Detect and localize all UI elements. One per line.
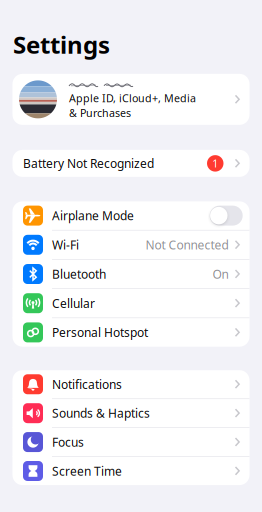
staticText: Not Connected [145, 237, 228, 253]
button[interactable]: Bluetooth [12, 260, 249, 288]
button[interactable]: Wi-Fi [12, 231, 249, 259]
staticText: Notifications [52, 376, 122, 392]
button[interactable]: Airplane Mode [12, 201, 249, 230]
staticText: & Purchases [69, 106, 131, 120]
button[interactable]: Personal Hotspot [12, 318, 249, 347]
staticText: 1 [212, 156, 218, 170]
staticText: Battery Not Recognized [23, 155, 154, 171]
button[interactable]: Notifications [12, 370, 249, 398]
button[interactable]: Sounds & Haptics [12, 399, 249, 427]
staticText: Personal Hotspot [52, 324, 148, 340]
staticText: Focus [52, 434, 84, 450]
staticText: Screen Time [52, 463, 122, 479]
staticText: Sounds & Haptics [52, 405, 150, 421]
staticText: Bluetooth [52, 266, 106, 282]
button[interactable]: Screen Time [12, 457, 249, 485]
staticText: On [212, 266, 228, 282]
staticText: Cellular [52, 295, 95, 311]
staticText: Apple ID, iCloud+, Media [69, 91, 196, 105]
button[interactable]: Apple ID, iCloud+, Media [12, 74, 249, 125]
staticText: Wi-Fi [52, 237, 79, 253]
button[interactable]: Cellular [12, 289, 249, 317]
button[interactable]: Battery Not Recognized [12, 150, 249, 177]
staticText: Settings [13, 28, 110, 60]
staticText: Airplane Mode [52, 208, 134, 224]
button[interactable]: Focus [12, 428, 249, 456]
